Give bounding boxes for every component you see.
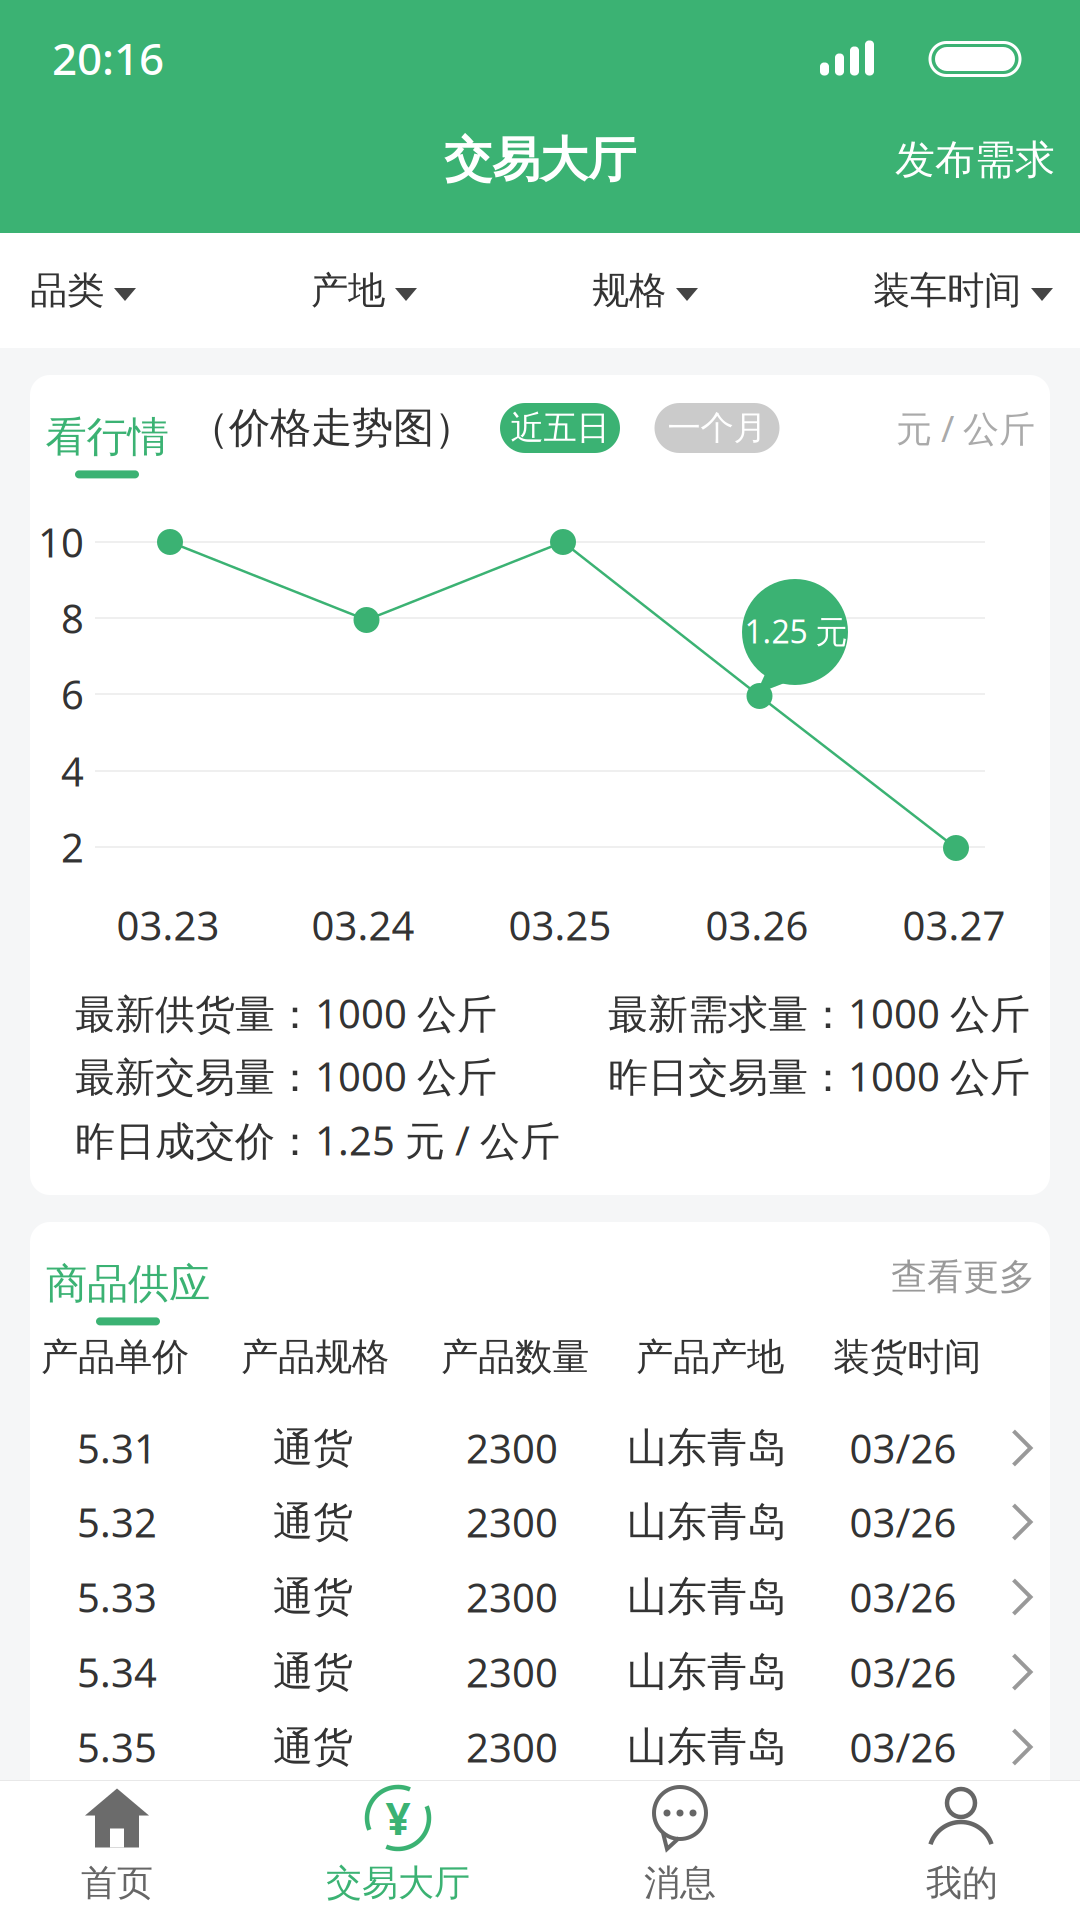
button[interactable]: 查看更多 xyxy=(735,1242,1035,1312)
staticText: 03.25 xyxy=(508,898,611,951)
staticText: 装车时间 xyxy=(873,268,1021,313)
staticText: 发布需求 xyxy=(895,135,1055,184)
button[interactable]: 发布需求 xyxy=(835,120,1055,200)
button[interactable]: 5.33 xyxy=(30,1560,1050,1634)
staticText: 5.33 xyxy=(77,1570,157,1623)
staticText: 元 / 公斤 xyxy=(896,404,1035,452)
staticText: 交易大厅 xyxy=(326,1861,470,1905)
staticText: 1.25 元 xyxy=(744,610,847,652)
staticText: 产品单价 xyxy=(41,1334,189,1380)
staticText: 4 xyxy=(61,744,84,797)
staticText: 通货 xyxy=(273,1647,353,1696)
button[interactable]: 5.35 xyxy=(30,1710,1050,1784)
button[interactable]: 5.32 xyxy=(30,1485,1050,1559)
button[interactable]: 5.34 xyxy=(30,1635,1050,1709)
staticText: 昨日成交价：1.25 元 / 公斤 xyxy=(75,1113,560,1166)
staticText: 最新供货量：1000 公斤 xyxy=(75,986,497,1039)
staticText: ¥ xyxy=(385,1789,410,1847)
staticText: 2300 xyxy=(466,1720,558,1773)
staticText: 产品产地 xyxy=(636,1334,784,1380)
staticText: 产品数量 xyxy=(441,1334,589,1380)
button[interactable]: 一个月 xyxy=(654,403,779,453)
staticText: 03.23 xyxy=(116,898,219,951)
staticText: 装货时间 xyxy=(833,1334,981,1380)
staticText: 8 xyxy=(61,591,84,644)
staticText: 2300 xyxy=(466,1645,558,1698)
staticText: 6 xyxy=(61,667,84,720)
staticText: 交易大厅 xyxy=(444,130,636,189)
staticText: （价格走势图） xyxy=(188,403,475,453)
button[interactable]: 装车时间 xyxy=(873,233,1053,348)
staticText: 产品规格 xyxy=(241,1334,389,1380)
button[interactable]: 近五日 xyxy=(500,403,620,453)
staticText: 查看更多 xyxy=(891,1255,1035,1299)
staticText: 规格 xyxy=(592,268,666,313)
staticText: 山东青岛 xyxy=(627,1647,787,1696)
staticText: 产地 xyxy=(311,268,385,313)
staticText: 最新交易量：1000 公斤 xyxy=(75,1049,497,1102)
button[interactable]: 5.31 xyxy=(30,1411,1050,1485)
staticText: 5.34 xyxy=(77,1645,157,1698)
staticText: 消息 xyxy=(644,1861,716,1905)
button[interactable]: 规格 xyxy=(592,233,698,348)
staticText: 03.26 xyxy=(705,898,808,951)
staticText: 2 xyxy=(61,820,84,873)
staticText: 2300 xyxy=(466,1421,558,1474)
staticText: 看行情 xyxy=(45,412,168,462)
staticText: 通货 xyxy=(273,1423,353,1472)
staticText: 我的 xyxy=(926,1861,998,1905)
staticText: 10 xyxy=(38,515,84,568)
staticText: 2300 xyxy=(466,1495,558,1548)
staticText: 5.35 xyxy=(77,1720,157,1773)
staticText: 近五日 xyxy=(510,407,609,448)
button[interactable]: 产地 xyxy=(311,233,417,348)
button[interactable]: 品类 xyxy=(30,233,136,348)
staticText: 山东青岛 xyxy=(627,1722,787,1771)
staticText: 03/26 xyxy=(849,1421,956,1474)
staticText: 品类 xyxy=(30,268,104,313)
button[interactable]: ¥ xyxy=(278,1780,518,1920)
staticText: 03/26 xyxy=(849,1645,956,1698)
staticText: 03.27 xyxy=(902,898,1005,951)
staticText: 通货 xyxy=(273,1722,353,1771)
staticText: 通货 xyxy=(273,1572,353,1621)
button[interactable]: 首页 xyxy=(0,1780,237,1920)
staticText: 首页 xyxy=(81,1861,153,1905)
staticText: 山东青岛 xyxy=(627,1423,787,1472)
staticText: 最新需求量：1000 公斤 xyxy=(608,986,1030,1039)
button[interactable]: 消息 xyxy=(560,1780,800,1920)
staticText: 一个月 xyxy=(667,407,766,448)
staticText: 山东青岛 xyxy=(627,1497,787,1546)
staticText: 山东青岛 xyxy=(627,1572,787,1621)
staticText: 03/26 xyxy=(849,1570,956,1623)
staticText: 昨日交易量：1000 公斤 xyxy=(608,1049,1030,1102)
staticText: 20:16 xyxy=(52,29,164,87)
staticText: 5.32 xyxy=(77,1495,157,1548)
staticText: 5.31 xyxy=(77,1421,157,1474)
staticText: 2300 xyxy=(466,1570,558,1623)
staticText: 03.24 xyxy=(311,898,414,951)
staticText: 商品供应 xyxy=(46,1259,210,1309)
staticText: 03/26 xyxy=(849,1720,956,1773)
button[interactable]: 我的 xyxy=(842,1780,1080,1920)
staticText: 03/26 xyxy=(849,1495,956,1548)
staticText: 通货 xyxy=(273,1497,353,1546)
